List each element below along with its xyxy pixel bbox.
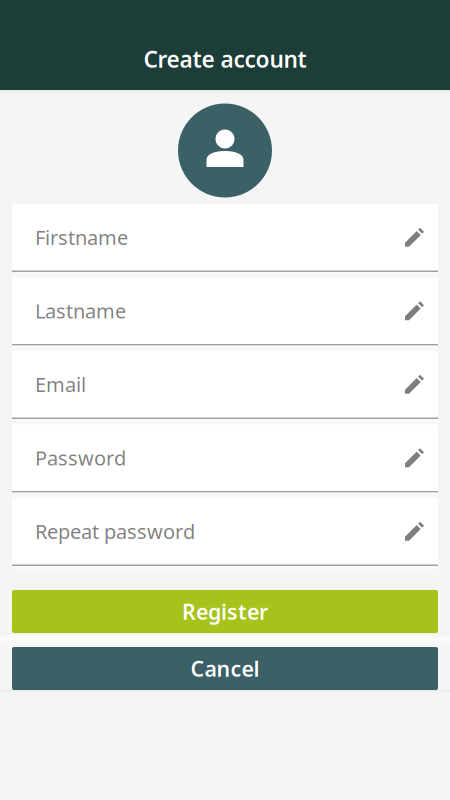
- button[interactable]: Firstname: [12, 204, 438, 277]
- button[interactable]: Password: [12, 424, 438, 498]
- staticText: Firstname: [35, 224, 128, 251]
- staticText: Lastname: [35, 297, 126, 324]
- staticText: Email: [35, 371, 86, 398]
- staticText: Register: [182, 597, 268, 626]
- staticText: Create account: [143, 44, 306, 74]
- button[interactable]: Email: [12, 351, 438, 424]
- button[interactable]: Repeat password: [12, 498, 438, 571]
- button[interactable]: Register: [12, 590, 438, 633]
- staticText: Password: [35, 444, 126, 471]
- staticText: Repeat password: [35, 518, 195, 545]
- button[interactable]: Lastname: [12, 277, 438, 351]
- button[interactable]: Cancel: [12, 647, 438, 690]
- staticText: Cancel: [190, 654, 259, 683]
